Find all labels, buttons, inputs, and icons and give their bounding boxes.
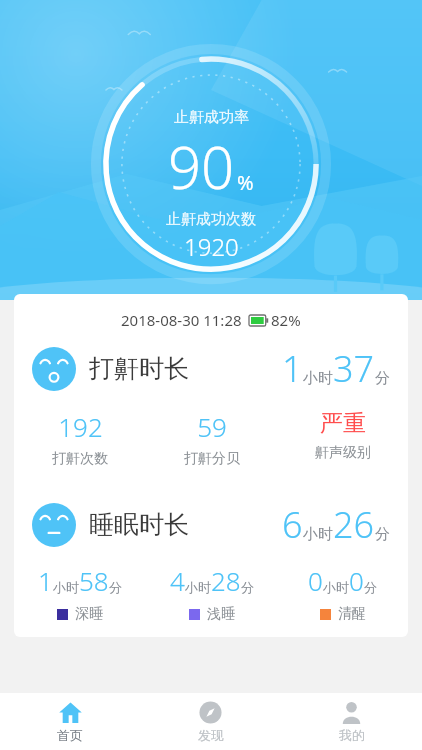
staticText: 鼾声级别 [315, 444, 371, 462]
staticText: 分 [109, 579, 122, 595]
button[interactable]: 1 [14, 563, 146, 623]
staticText: 发现 [198, 727, 224, 743]
staticText: 0 [308, 563, 323, 598]
staticText: 59 [197, 409, 227, 444]
staticText: 分 [375, 369, 390, 388]
staticText: 4 [170, 563, 185, 598]
staticText: 37 [333, 344, 375, 393]
button[interactable]: 4 [146, 563, 277, 623]
staticText: 28 [211, 563, 241, 598]
staticText: 58 [79, 563, 109, 598]
staticText: 打鼾时长 [89, 353, 189, 384]
button[interactable]: 首页 [0, 693, 140, 750]
staticText: 止鼾成功率 [174, 108, 249, 127]
staticText: % [237, 169, 254, 196]
button[interactable]: 发现 [140, 693, 281, 750]
staticText: 睡眠时长 [89, 509, 189, 540]
staticText: 小时 [185, 579, 211, 595]
staticText: 1920 [184, 230, 239, 263]
button[interactable]: 192 [14, 407, 146, 470]
staticText: 分 [241, 579, 254, 595]
staticText: 清醒 [338, 605, 366, 623]
staticText: 打鼾分贝 [184, 450, 240, 468]
staticText: 1 [282, 344, 303, 393]
staticText: 小时 [303, 525, 333, 544]
staticText: 分 [375, 525, 390, 544]
staticText: 2018-08-30 11:28 [121, 310, 242, 330]
button[interactable]: 59 [146, 407, 277, 470]
staticText: 6 [282, 500, 303, 549]
staticText: 90 [168, 127, 235, 206]
staticText: 我的 [339, 727, 365, 743]
staticText: 严重 [320, 409, 366, 438]
staticText: 分 [364, 579, 377, 595]
staticText: 1 [38, 563, 53, 598]
button[interactable]: 0 [277, 563, 408, 623]
staticText: 26 [333, 500, 375, 549]
staticText: 打鼾次数 [52, 450, 108, 468]
staticText: 192 [58, 409, 103, 444]
staticText: 0 [349, 563, 364, 598]
staticText: 小时 [323, 579, 349, 595]
staticText: 止鼾成功次数 [166, 210, 256, 229]
button[interactable]: 严重 [277, 407, 408, 464]
staticText: 深睡 [75, 605, 103, 623]
staticText: 小时 [53, 579, 79, 595]
staticText: 小时 [303, 369, 333, 388]
staticText: 浅睡 [207, 605, 235, 623]
button[interactable]: 我的 [281, 693, 422, 750]
staticText: 首页 [57, 727, 83, 743]
staticText: 82% [271, 310, 301, 330]
